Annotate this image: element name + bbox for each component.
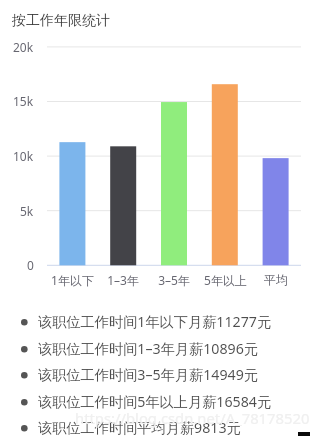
- staticText: 该职位工作时间3–5年月薪14949元: [38, 365, 258, 384]
- staticText: 平均: [264, 272, 288, 287]
- staticText: 该职位工作时间平均月薪9813元: [38, 418, 241, 436]
- staticText: 0: [27, 257, 34, 273]
- staticText: 1年以下: [51, 272, 94, 288]
- staticText: 3–5年: [158, 272, 190, 288]
- staticText: 20k: [13, 39, 34, 55]
- staticText: 10k: [13, 148, 34, 164]
- staticText: 该职位工作时间5年以上月薪16584元: [38, 392, 272, 411]
- staticText: 按工作年限统计: [12, 12, 110, 30]
- staticText: 该职位工作时间1年以下月薪11277元: [38, 312, 272, 331]
- staticText: 该职位工作时间1–3年月薪10896元: [38, 339, 258, 358]
- staticText: 15k: [13, 93, 34, 109]
- staticText: 5年以上: [204, 272, 247, 288]
- staticText: 5k: [20, 203, 34, 219]
- staticText: 1–3年: [107, 272, 139, 288]
- staticText: https://blog.csdn.net/A_78178520: [75, 408, 310, 428]
